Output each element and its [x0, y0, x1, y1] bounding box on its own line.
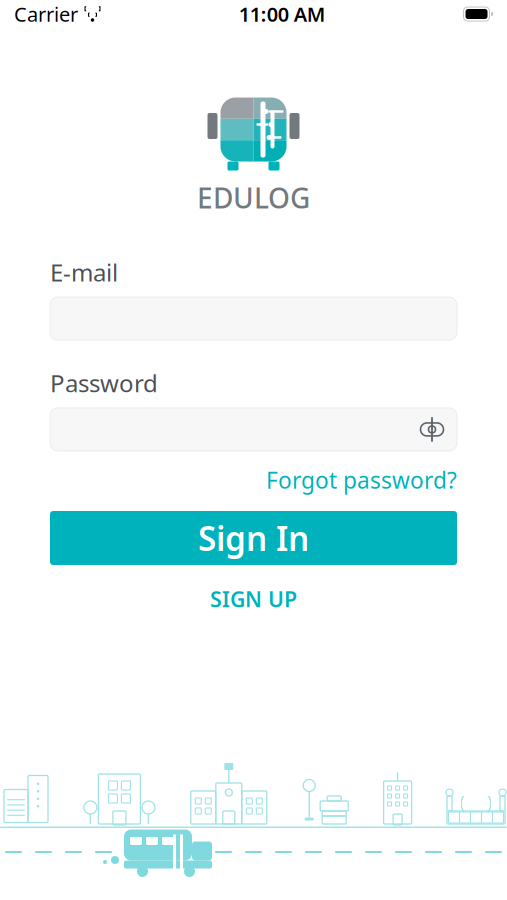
button[interactable]: Show password	[417, 414, 447, 444]
button[interactable]: Forgot password?	[266, 465, 457, 495]
staticText: Sign In	[198, 516, 309, 560]
staticText: Carrier	[14, 1, 78, 27]
button[interactable]: SIGN UP	[50, 583, 457, 615]
button[interactable]: Sign In	[50, 511, 457, 565]
staticText: Forgot password?	[266, 465, 457, 495]
staticText: 11:00 AM	[239, 1, 326, 27]
staticText: EDULOG	[197, 179, 310, 216]
staticText: SIGN UP	[210, 585, 297, 613]
staticText: Password	[50, 367, 158, 399]
staticText: E-mail	[50, 256, 118, 288]
